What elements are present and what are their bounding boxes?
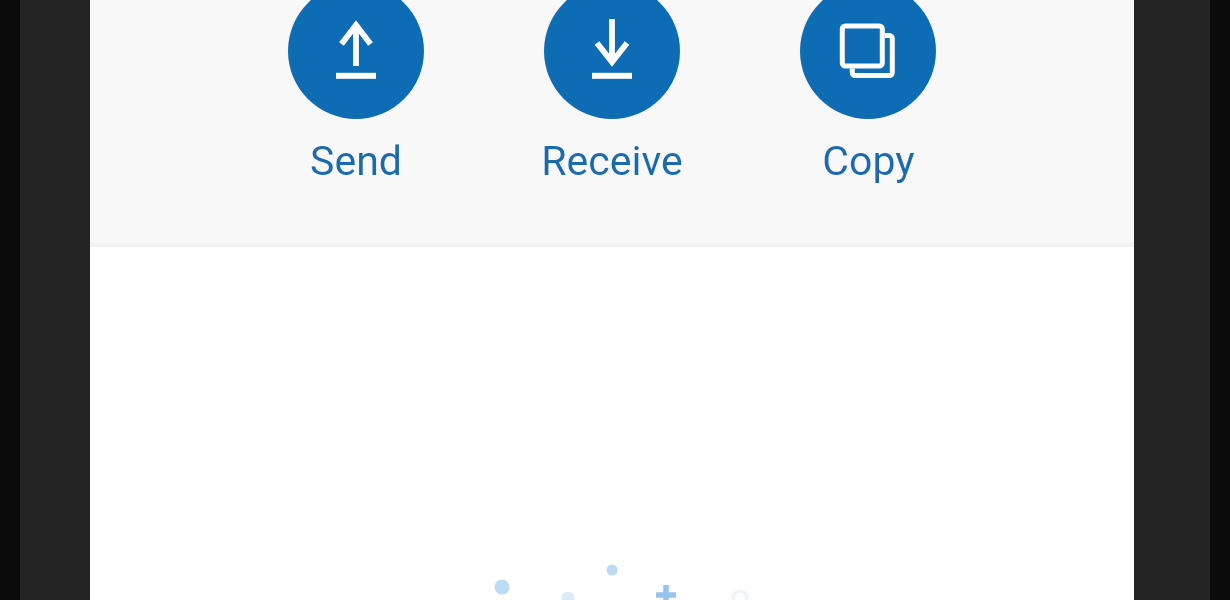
button[interactable]: Copy xyxy=(778,0,958,190)
staticText: Copy xyxy=(822,137,915,185)
button[interactable]: Send xyxy=(266,0,446,190)
other: Copy xyxy=(800,0,936,119)
staticText: Receive xyxy=(541,137,683,185)
other: Receive xyxy=(544,0,680,119)
staticText: Send xyxy=(310,137,402,185)
button[interactable]: Receive xyxy=(522,0,702,190)
other: Send xyxy=(288,0,424,119)
